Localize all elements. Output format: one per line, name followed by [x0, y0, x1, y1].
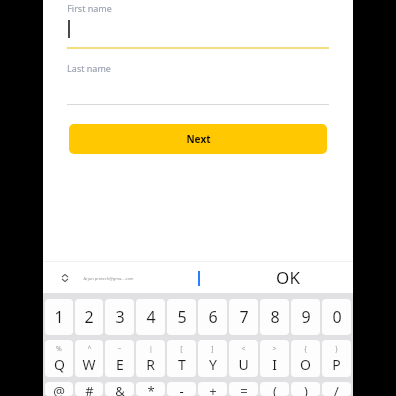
staticText: 9 — [301, 306, 311, 328]
button[interactable]: - — [167, 382, 196, 396]
button[interactable]: 4 — [136, 299, 165, 335]
staticText: / — [334, 382, 339, 396]
button[interactable]: OK — [258, 264, 318, 291]
button[interactable]: Arjun.protech@gma….com — [83, 270, 134, 286]
button[interactable]: Expand suggestions — [55, 268, 75, 288]
staticText: O — [300, 355, 311, 374]
staticText: W — [82, 355, 96, 374]
button[interactable]: ^ — [75, 340, 103, 377]
button[interactable]: 3 — [105, 299, 134, 335]
staticText: 7 — [239, 306, 249, 328]
button[interactable]: 7 — [229, 299, 258, 335]
staticText: ( — [273, 382, 277, 396]
staticText: @ — [53, 382, 65, 396]
staticText: { — [304, 344, 307, 354]
staticText: ] — [211, 344, 214, 354]
staticText: - — [179, 382, 184, 396]
staticText: [ — [180, 344, 183, 354]
staticText: E — [116, 355, 124, 374]
staticText: Q — [54, 355, 65, 374]
button[interactable]: # — [75, 382, 103, 396]
staticText: U — [238, 355, 249, 374]
staticText: % — [56, 344, 62, 354]
staticText: ~ — [117, 344, 122, 354]
button[interactable]: 1 — [45, 299, 73, 335]
button[interactable]: { — [291, 340, 320, 377]
staticText: 1 — [54, 306, 64, 328]
button[interactable]: [ — [167, 340, 196, 377]
staticText: 4 — [146, 306, 156, 328]
button[interactable]: 8 — [260, 299, 289, 335]
staticText: T — [178, 355, 186, 374]
button[interactable]: * — [136, 382, 165, 396]
staticText: ) — [304, 382, 308, 396]
staticText: Last name — [67, 62, 111, 74]
staticText: 3 — [115, 306, 125, 328]
staticText: R — [146, 355, 155, 374]
button[interactable]: = — [229, 382, 258, 396]
staticText: # — [85, 382, 94, 396]
staticText: 2 — [84, 306, 94, 328]
button[interactable]: ] — [198, 340, 227, 377]
button[interactable]: & — [105, 382, 134, 396]
staticText: > — [272, 344, 277, 354]
button[interactable]: 5 — [167, 299, 196, 335]
staticText: + — [209, 382, 217, 396]
button[interactable]: ( — [260, 382, 289, 396]
staticText: Y — [209, 355, 217, 374]
button[interactable]: 9 — [291, 299, 320, 335]
staticText: First name — [67, 2, 112, 14]
staticText: & — [115, 382, 125, 396]
staticText: * — [147, 382, 155, 396]
staticText: < — [241, 344, 246, 354]
staticText: 8 — [270, 306, 280, 328]
button[interactable]: > — [260, 340, 289, 377]
staticText: P — [332, 355, 341, 374]
staticText: Next — [186, 132, 211, 146]
button[interactable]: / — [322, 382, 351, 396]
button[interactable]: % — [45, 340, 73, 377]
staticText: I — [272, 355, 277, 374]
staticText: 6 — [208, 306, 218, 328]
button[interactable]: 6 — [198, 299, 227, 335]
button[interactable]: 0 — [322, 299, 351, 335]
button[interactable]: < — [229, 340, 258, 377]
button[interactable]: ) — [291, 382, 320, 396]
staticText: ^ — [87, 344, 92, 354]
staticText: OK — [276, 266, 300, 289]
button[interactable]: ~ — [105, 340, 134, 377]
button[interactable]: } — [322, 340, 351, 377]
button[interactable]: + — [198, 382, 227, 396]
staticText: Arjun.protech@gma….com — [83, 276, 134, 281]
button[interactable]: Next — [69, 124, 327, 154]
staticText: } — [335, 344, 338, 354]
button[interactable]: @ — [45, 382, 73, 396]
staticText: 5 — [177, 306, 187, 328]
staticText: | — [149, 344, 153, 354]
staticText: 0 — [332, 306, 342, 328]
button[interactable]: 2 — [75, 299, 103, 335]
button[interactable]: | — [136, 340, 165, 377]
staticText: = — [240, 382, 248, 396]
